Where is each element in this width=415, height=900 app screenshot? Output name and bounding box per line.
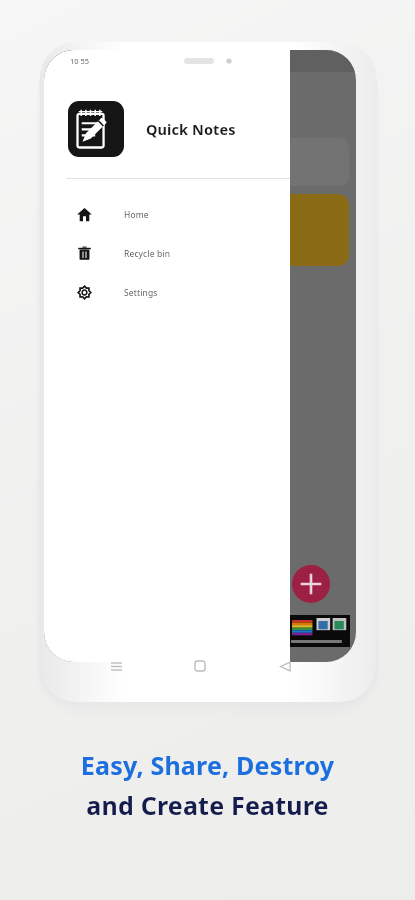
staticText: Home — [124, 209, 149, 221]
button[interactable]: Back — [272, 653, 298, 679]
staticText: Recycle bin — [124, 248, 171, 260]
button[interactable]: Quick Notes — [44, 88, 290, 170]
staticText: Quick Notes — [146, 119, 236, 139]
button[interactable]: Home — [187, 653, 213, 679]
button[interactable]: Add note — [292, 565, 330, 603]
button[interactable]: Home — [44, 195, 290, 234]
staticText: Easy, Share, Destroy — [0, 748, 415, 782]
button[interactable]: Recycle bin — [44, 234, 290, 273]
button[interactable] — [288, 615, 350, 647]
button[interactable]: Recents — [103, 653, 129, 679]
button[interactable]: Settings — [44, 273, 290, 312]
staticText: Settings — [124, 287, 158, 299]
staticText: and Create Feature — [0, 788, 415, 822]
staticText: 10 55 — [70, 56, 90, 66]
